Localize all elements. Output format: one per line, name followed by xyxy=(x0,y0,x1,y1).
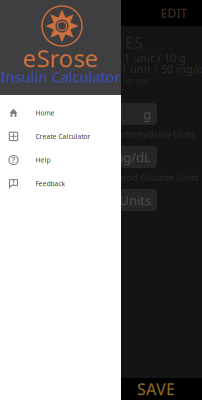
button[interactable]: SAVE xyxy=(133,378,179,400)
staticText: Target xyxy=(122,74,149,86)
staticText: ES xyxy=(125,32,143,53)
staticText: EDIT xyxy=(160,5,187,21)
staticText: mg/dL xyxy=(111,148,151,166)
button[interactable]: Create Calculator xyxy=(0,125,121,148)
button[interactable]: Time xyxy=(12,0,72,26)
staticText: Help xyxy=(35,156,50,164)
staticText: 1 unit / 10 g xyxy=(124,51,186,65)
button[interactable]: EDIT xyxy=(159,0,189,26)
staticText: SAVE xyxy=(137,378,175,400)
staticText: Insulin Calculator xyxy=(0,67,120,86)
staticText: ! xyxy=(12,178,14,187)
button[interactable]: ! xyxy=(0,172,121,195)
staticText: Units xyxy=(119,191,151,209)
staticText: Feedback xyxy=(35,179,65,188)
staticText: 1 unit / 50 mg/dL xyxy=(121,62,202,76)
staticText: ? xyxy=(11,155,15,165)
staticText: g xyxy=(143,105,151,123)
staticText: eSrose xyxy=(22,42,98,74)
staticText: 6:42 PM xyxy=(12,5,57,21)
staticText: Carbohydrate Units xyxy=(110,128,195,140)
button[interactable]: ? xyxy=(0,148,121,172)
staticText: Home xyxy=(35,108,54,117)
button[interactable]: Home xyxy=(0,101,121,125)
staticText: Create Calculator xyxy=(35,132,90,141)
staticText: Blood Glucose Units xyxy=(112,171,198,183)
